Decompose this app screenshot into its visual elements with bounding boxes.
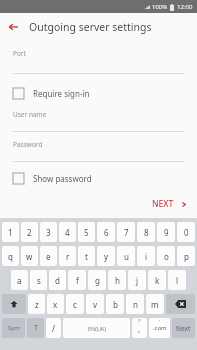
button[interactable]: 2 (21, 222, 38, 242)
button[interactable]: a (11, 270, 28, 290)
button[interactable]: Show password (0, 168, 197, 189)
staticText: 6 (104, 227, 109, 238)
staticText: , (138, 323, 141, 334)
button[interactable]: Lang (27, 318, 44, 338)
staticText: a (17, 275, 22, 286)
staticText: 5 (84, 227, 89, 238)
staticText: NEXT (152, 198, 174, 210)
staticText: 3 (46, 227, 51, 238)
staticText: Show password (33, 173, 92, 184)
button[interactable]: Backspace (166, 294, 195, 314)
button[interactable]: 0 (177, 222, 195, 242)
staticText: EN(UK) (88, 325, 106, 332)
button[interactable]: ~ (149, 318, 170, 338)
staticText: e (46, 251, 51, 262)
button[interactable]: Sym (2, 318, 25, 338)
button[interactable]: y (97, 246, 115, 266)
staticText: ~ (158, 318, 161, 323)
button[interactable]: d (49, 270, 66, 290)
button[interactable]: Back (0, 14, 26, 40)
button[interactable]: s (30, 270, 47, 290)
button[interactable]: n (126, 294, 144, 314)
staticText: z (35, 299, 39, 310)
staticText: r (66, 251, 70, 262)
staticText: 0 (184, 227, 189, 238)
staticText: j (136, 275, 139, 286)
staticText: 12:00 (177, 3, 193, 11)
button[interactable]: 3 (40, 222, 57, 242)
staticText: o (164, 251, 169, 262)
staticText: 100% (152, 3, 168, 11)
button[interactable]: m (146, 294, 164, 314)
button[interactable]: i (137, 246, 155, 266)
button[interactable]: g (88, 270, 106, 290)
staticText: T (34, 323, 38, 333)
button[interactable]: v (86, 294, 104, 314)
staticText: c (73, 299, 77, 310)
staticText: k (155, 275, 160, 286)
staticText: .com (153, 324, 167, 332)
staticText: User name (13, 110, 47, 119)
button[interactable]: h (108, 270, 126, 290)
staticText: p (184, 251, 189, 262)
button[interactable]: 5 (78, 222, 95, 242)
staticText: f (76, 275, 79, 286)
staticText: Password (13, 140, 43, 149)
button[interactable]: 7 (117, 222, 135, 242)
button[interactable]: Require sign-in (0, 83, 197, 104)
button[interactable]: r (59, 246, 76, 266)
button[interactable]: 9 (157, 222, 175, 242)
button[interactable]: u (117, 246, 135, 266)
staticText: 1 (8, 227, 13, 238)
button[interactable]: e (40, 246, 57, 266)
staticText: 9 (164, 227, 169, 238)
button[interactable]: k (148, 270, 166, 290)
staticText: m (151, 299, 159, 310)
staticText: v (93, 299, 98, 310)
staticText: u (124, 251, 129, 262)
button[interactable]: f (68, 270, 86, 290)
button[interactable]: Next (172, 318, 195, 338)
staticText: s (37, 275, 41, 286)
staticText: b (113, 299, 118, 310)
staticText: h (115, 275, 120, 286)
button[interactable]: b (106, 294, 124, 314)
staticText: t (85, 251, 88, 262)
button[interactable]: t (78, 246, 95, 266)
staticText: q (8, 251, 13, 262)
button[interactable]: p (177, 246, 195, 266)
staticText: Outgoing server settings (29, 20, 152, 34)
staticText: 8 (144, 227, 149, 238)
staticText: Next (176, 324, 191, 333)
button[interactable]: c (66, 294, 84, 314)
button[interactable]: !? (132, 318, 147, 338)
staticText: y (104, 251, 109, 262)
staticText: / (52, 323, 55, 334)
button[interactable]: o (157, 246, 175, 266)
button[interactable]: j (128, 270, 146, 290)
staticText: 2 (27, 227, 32, 238)
button[interactable]: w (21, 246, 38, 266)
button[interactable]: 1 (2, 222, 19, 242)
staticText: 4 (65, 227, 70, 238)
button[interactable]: 8 (137, 222, 155, 242)
button[interactable]: 6 (97, 222, 115, 242)
staticText: n (133, 299, 138, 310)
button[interactable]: / (46, 318, 61, 338)
staticText: x (53, 299, 58, 310)
button[interactable]: z (28, 294, 45, 314)
staticText: Sym (8, 324, 20, 332)
staticText: Require sign-in (33, 88, 90, 99)
button[interactable]: EN(UK) (63, 318, 130, 338)
button[interactable]: Shift (2, 294, 26, 314)
staticText: g (95, 275, 100, 286)
staticText: l (176, 275, 179, 286)
staticText: w (26, 251, 33, 262)
button[interactable]: x (47, 294, 64, 314)
button[interactable]: l (168, 270, 186, 290)
button[interactable]: q (2, 246, 19, 266)
button[interactable]: 4 (59, 222, 76, 242)
staticText: i (145, 251, 148, 262)
button[interactable]: NEXT (142, 194, 197, 214)
staticText: 7 (124, 227, 129, 238)
